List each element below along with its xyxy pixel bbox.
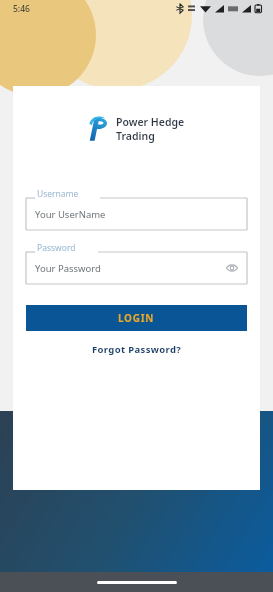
staticText: Password <box>37 242 76 254</box>
staticText: Power Hedge <box>116 115 185 129</box>
staticText: Forgot Password? <box>92 343 182 356</box>
button[interactable]: LOGIN <box>26 305 247 331</box>
staticText: Username <box>37 188 79 200</box>
button[interactable]: Forgot Password? <box>84 339 190 360</box>
staticText: 5:46 <box>13 3 30 15</box>
staticText: Your UserName <box>35 208 106 221</box>
staticText: Your Password <box>35 262 101 275</box>
button[interactable]: Show password <box>225 261 239 275</box>
button[interactable]: Your Password <box>35 252 239 284</box>
button[interactable]: Your UserName <box>35 198 239 230</box>
staticText: LOGIN <box>118 311 155 325</box>
staticText: Trading <box>116 129 155 143</box>
